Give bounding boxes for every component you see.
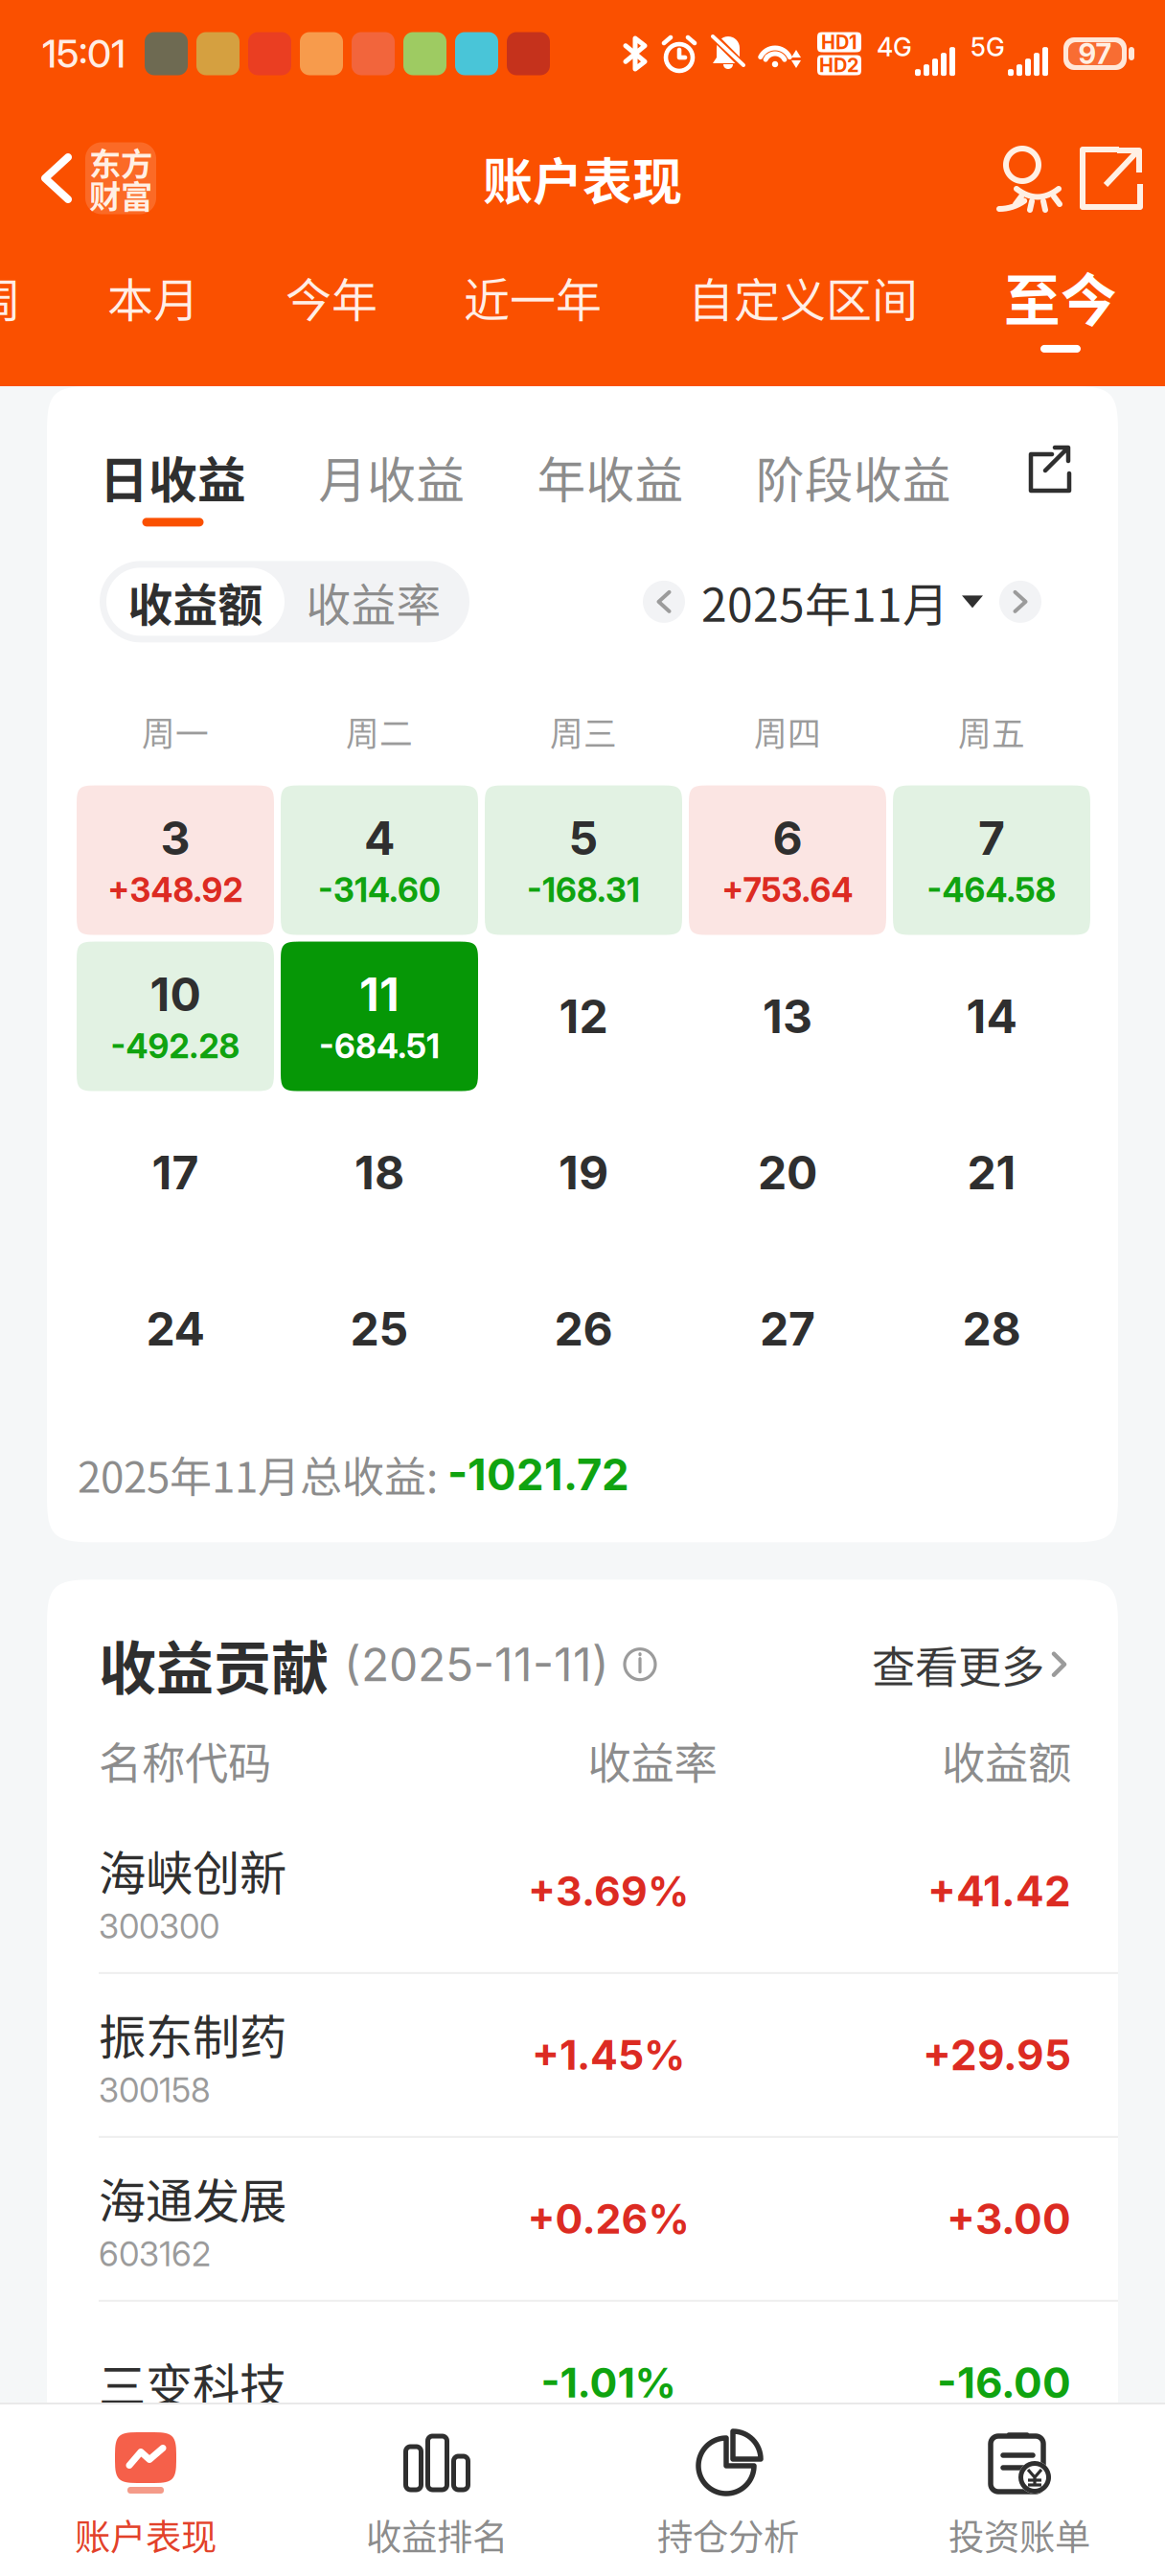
button[interactable]: Previous month (640, 578, 688, 626)
staticText: -492.28 (111, 1026, 240, 1066)
button[interactable]: 月收益 (318, 442, 465, 512)
button[interactable]: 至今 (1004, 256, 1117, 353)
staticText: 2025年11月总收益: (78, 1444, 447, 1505)
staticText: 三变科技 (99, 2348, 286, 2417)
button[interactable]: 10 (77, 942, 274, 1091)
staticText: 21 (967, 1145, 1016, 1200)
button[interactable]: 振东制药 (47, 1974, 1118, 2138)
staticText: 周 (0, 264, 21, 330)
staticText: 2025年11月 (701, 568, 948, 635)
staticText: -314.60 (318, 870, 441, 910)
button[interactable]: 阶段收益 (756, 442, 951, 512)
staticText: 名称代码 (99, 1729, 271, 1792)
staticText: -1021.72 (447, 1448, 629, 1501)
staticText: -684.51 (319, 1026, 440, 1066)
button[interactable]: 17 (77, 1098, 274, 1247)
staticText: 18 (354, 1145, 404, 1200)
button[interactable]: 11 (281, 942, 478, 1091)
staticText: 13 (763, 989, 812, 1044)
button[interactable]: 27 (689, 1254, 886, 1404)
staticText: 97 (1078, 37, 1112, 71)
button[interactable]: 近一年 (464, 256, 602, 330)
button[interactable]: 海峡创新 (47, 1810, 1118, 1974)
staticText: 查看更多 (872, 1633, 1044, 1696)
staticText: 5G (971, 32, 1005, 62)
button[interactable]: 账户表现 (0, 2404, 291, 2576)
staticText: +3.00 (947, 2193, 1071, 2244)
button[interactable]: 24 (77, 1254, 274, 1404)
button[interactable]: 投资账单 (874, 2404, 1165, 2576)
button[interactable]: 19 (485, 1098, 682, 1247)
staticText: 603162 (99, 2234, 211, 2274)
staticText: 海通发展 (99, 2164, 286, 2232)
button[interactable]: 持仓分析 (582, 2404, 874, 2576)
staticText: 日收益 (100, 442, 246, 512)
button[interactable]: 6 (689, 785, 886, 935)
button[interactable]: 三变科技 (47, 2302, 1118, 2464)
staticText: +41.42 (927, 1866, 1071, 1917)
button[interactable]: 查看更多 (872, 1633, 1066, 1696)
button[interactable]: 东方财富 (85, 142, 156, 214)
button[interactable]: 自定义区间 (688, 256, 918, 330)
staticText: 年收益 (537, 442, 684, 512)
button[interactable]: Next month (996, 578, 1044, 626)
button[interactable]: 周 (0, 256, 21, 330)
button[interactable]: 26 (485, 1254, 682, 1404)
staticText: 4 (364, 810, 395, 866)
button[interactable]: 本月 (107, 256, 199, 330)
button[interactable]: 28 (893, 1254, 1090, 1404)
staticText: 7 (978, 810, 1005, 866)
button[interactable]: 海通发展 (47, 2138, 1118, 2302)
button[interactable]: 收益额 (106, 568, 285, 636)
button[interactable]: 今年 (286, 256, 377, 330)
button[interactable]: Back (28, 138, 85, 218)
staticText: HD1 (821, 31, 857, 54)
staticText: 300300 (99, 1906, 219, 1946)
button[interactable]: 收益排名 (291, 2404, 582, 2576)
staticText: 收益率 (588, 1729, 717, 1792)
button[interactable]: 12 (485, 942, 682, 1091)
staticText: 收益排名 (366, 2509, 508, 2561)
button[interactable]: 25 (281, 1254, 478, 1404)
staticText: 今年 (286, 264, 377, 330)
staticText: 阶段收益 (756, 442, 951, 512)
staticText: 6 (773, 810, 802, 866)
staticText: 财富 (89, 171, 152, 218)
staticText: 25 (350, 1301, 409, 1357)
button[interactable]: 20 (689, 1098, 886, 1247)
button[interactable]: 4 (281, 785, 478, 935)
staticText: +3.69% (528, 1866, 689, 1916)
button[interactable]: 年收益 (537, 442, 684, 512)
staticText: 17 (152, 1145, 199, 1200)
button[interactable]: 14 (893, 942, 1090, 1091)
staticText: -16.00 (937, 2357, 1071, 2408)
staticText: 27 (760, 1301, 815, 1357)
staticText: 19 (559, 1145, 608, 1200)
staticText: -1.01% (541, 2358, 676, 2407)
button[interactable]: 18 (281, 1098, 478, 1247)
button[interactable]: 日收益 (100, 442, 246, 527)
button[interactable]: Account (992, 138, 1072, 218)
button[interactable]: 收益率 (285, 568, 463, 636)
staticText: 14 (966, 989, 1017, 1044)
staticText: 24 (146, 1301, 205, 1357)
button[interactable]: Share (1023, 442, 1077, 497)
staticText: +753.64 (722, 870, 853, 910)
staticText: 26 (554, 1301, 613, 1357)
staticText: 自定义区间 (688, 264, 918, 330)
staticText: 至今 (1004, 256, 1117, 337)
staticText: 周一 (142, 708, 209, 756)
button[interactable]: 5 (485, 785, 682, 935)
staticText: 月收益 (318, 442, 465, 512)
button[interactable]: 13 (689, 942, 886, 1091)
button[interactable]: 21 (893, 1098, 1090, 1247)
button[interactable]: 7 (893, 785, 1090, 935)
staticText: 投资账单 (948, 2509, 1090, 2561)
staticText: 20 (758, 1145, 817, 1200)
staticText: 账户表现 (483, 142, 682, 214)
staticText: -168.31 (527, 870, 640, 910)
staticText: 振东制药 (99, 2000, 286, 2068)
button[interactable]: Share (1072, 138, 1151, 218)
button[interactable]: 3 (77, 785, 274, 935)
staticText: 3 (160, 810, 190, 866)
